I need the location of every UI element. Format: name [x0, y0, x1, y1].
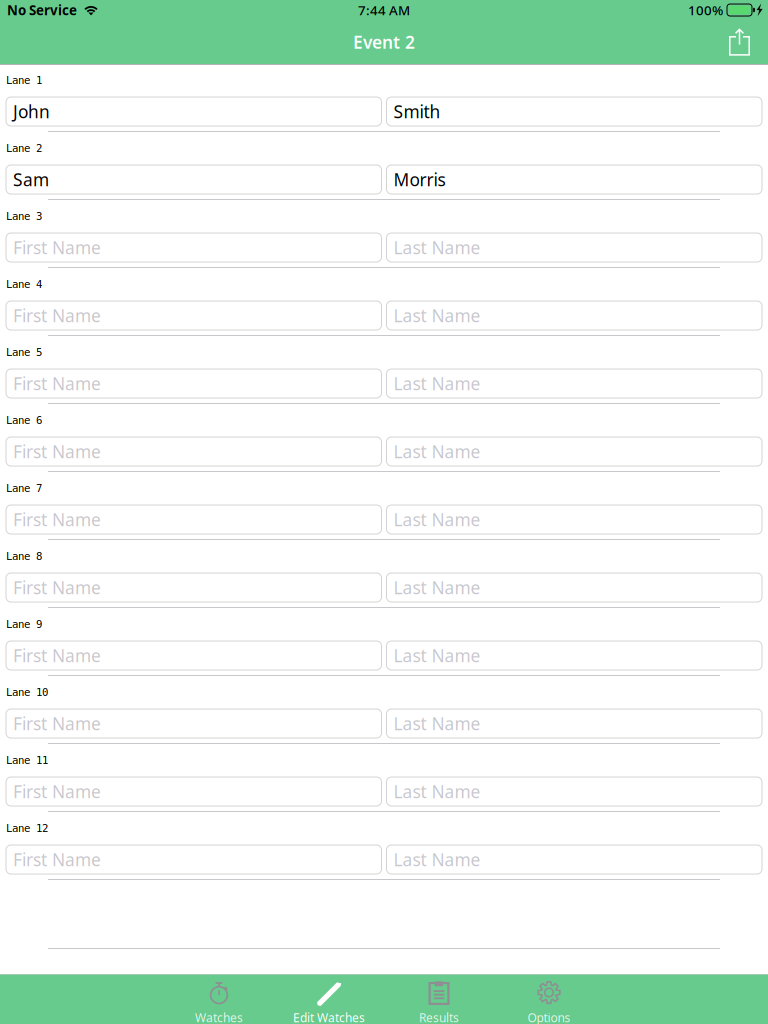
staticText: Last Name — [393, 236, 480, 259]
button[interactable]: Last Name — [386, 505, 762, 534]
staticText: First Name — [13, 236, 101, 259]
staticText: Last Name — [393, 372, 480, 395]
staticText: No Service — [7, 1, 77, 19]
button[interactable]: Last Name — [386, 709, 762, 738]
staticText: 7:44 AM — [358, 1, 410, 19]
staticText: Last Name — [393, 304, 480, 327]
staticText: Lane 11 — [6, 754, 48, 766]
staticText: Last Name — [393, 508, 480, 531]
staticText: First Name — [13, 848, 101, 871]
button[interactable]: Last Name — [386, 301, 762, 330]
staticText: First Name — [13, 304, 101, 327]
button[interactable]: Sam — [6, 165, 381, 194]
button[interactable]: First Name — [6, 505, 381, 534]
button[interactable]: First Name — [6, 573, 381, 602]
staticText: Last Name — [393, 712, 480, 735]
staticText: First Name — [13, 712, 101, 735]
button[interactable]: First Name — [6, 845, 381, 874]
staticText: Lane 7 — [6, 482, 42, 494]
staticText: Options — [527, 1009, 570, 1024]
staticText: Lane 6 — [6, 414, 42, 426]
button[interactable]: Smith — [386, 97, 762, 126]
button[interactable]: Share — [721, 23, 758, 60]
staticText: Last Name — [393, 848, 480, 871]
staticText: 100% — [688, 1, 723, 19]
staticText: First Name — [13, 644, 101, 667]
button[interactable]: Edit Watches — [274, 975, 384, 1024]
staticText: Last Name — [393, 440, 480, 463]
button[interactable]: Watches — [164, 975, 274, 1024]
button[interactable]: Morris — [386, 165, 762, 194]
button[interactable]: First Name — [6, 301, 381, 330]
staticText: Lane 4 — [6, 278, 42, 290]
staticText: Last Name — [393, 644, 480, 667]
button[interactable]: First Name — [6, 369, 381, 398]
button[interactable]: First Name — [6, 233, 381, 262]
button[interactable]: First Name — [6, 709, 381, 738]
button[interactable]: First Name — [6, 641, 381, 670]
button[interactable]: Last Name — [386, 845, 762, 874]
staticText: Edit Watches — [293, 1009, 365, 1024]
staticText: Watches — [195, 1009, 243, 1024]
staticText: Lane 3 — [6, 210, 42, 222]
staticText: Lane 8 — [6, 550, 42, 562]
button[interactable]: Results — [384, 975, 494, 1024]
staticText: First Name — [13, 780, 101, 803]
staticText: John — [13, 100, 50, 123]
button[interactable]: John — [6, 97, 381, 126]
staticText: Morris — [393, 168, 445, 191]
staticText: Lane 5 — [6, 346, 42, 358]
button[interactable]: Last Name — [386, 777, 762, 806]
staticText: Lane 1 — [6, 74, 42, 86]
staticText: Smith — [393, 100, 440, 123]
staticText: Sam — [13, 168, 49, 191]
button[interactable]: Last Name — [386, 233, 762, 262]
button[interactable]: First Name — [6, 777, 381, 806]
staticText: First Name — [13, 440, 101, 463]
button[interactable]: First Name — [6, 437, 381, 466]
staticText: Lane 12 — [6, 822, 48, 834]
button[interactable]: Last Name — [386, 437, 762, 466]
button[interactable]: Last Name — [386, 573, 762, 602]
button[interactable]: Last Name — [386, 641, 762, 670]
staticText: Last Name — [393, 780, 480, 803]
staticText: Last Name — [393, 576, 480, 599]
button[interactable]: Options — [494, 975, 604, 1024]
staticText: First Name — [13, 576, 101, 599]
staticText: First Name — [13, 372, 101, 395]
staticText: First Name — [13, 508, 101, 531]
staticText: Lane 2 — [6, 142, 42, 154]
staticText: Lane 9 — [6, 618, 42, 630]
staticText: Lane 10 — [6, 686, 48, 698]
staticText: Event 2 — [353, 30, 415, 53]
staticText: Results — [419, 1009, 459, 1024]
button[interactable]: Last Name — [386, 369, 762, 398]
